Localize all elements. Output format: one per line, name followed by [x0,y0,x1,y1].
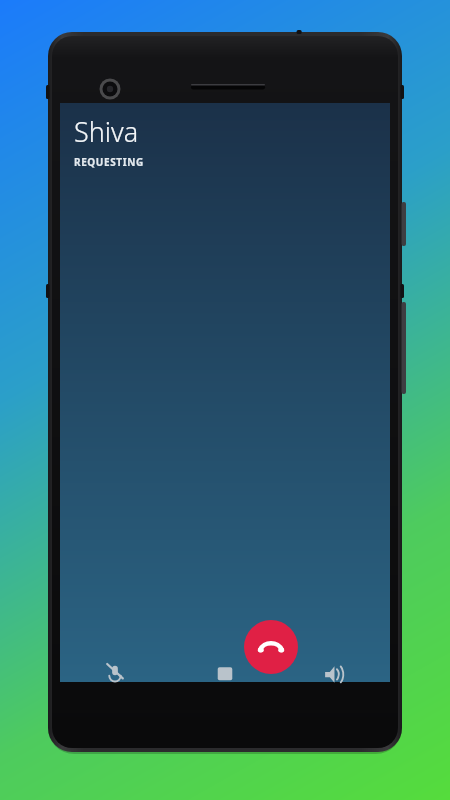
staticText: REQUESTING [74,155,144,169]
button[interactable]: Mute [60,656,170,682]
button[interactable]: Dialpad [170,656,280,682]
button[interactable]: End call [244,620,298,674]
staticText: Shiva [74,113,139,150]
button[interactable]: Speaker [280,656,390,682]
